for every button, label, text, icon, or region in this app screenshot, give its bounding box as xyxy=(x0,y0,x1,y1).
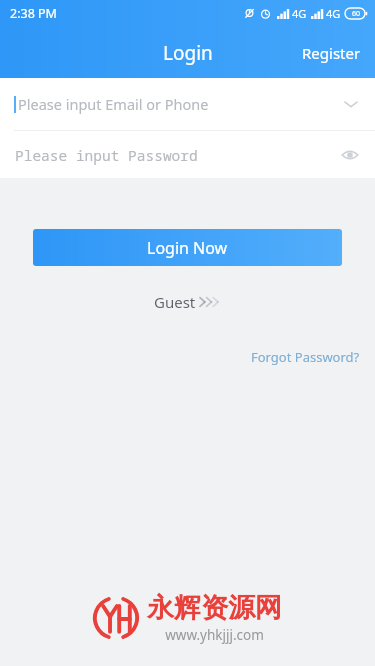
staticText: 4G xyxy=(292,6,307,21)
other: Toggle password visibility xyxy=(341,146,359,164)
staticText: Please input Email or Phone xyxy=(18,94,343,114)
staticText: Login xyxy=(163,40,213,66)
button[interactable]: Guest xyxy=(142,288,234,316)
button[interactable]: Register xyxy=(288,27,375,78)
staticText: Login Now xyxy=(147,237,228,259)
staticText: Please input Password xyxy=(15,145,341,165)
button[interactable]: Please input Password xyxy=(0,131,375,178)
other: Show account list xyxy=(343,96,359,112)
staticText: 4G xyxy=(326,6,341,21)
staticText: Register xyxy=(302,43,361,63)
button[interactable]: Please input Email or Phone xyxy=(0,78,375,130)
button[interactable]: Login Now xyxy=(33,229,342,266)
staticText: www.yhkjjj.com xyxy=(165,626,264,644)
staticText: Forgot Password? xyxy=(251,348,360,366)
staticText: 永辉资源网 xyxy=(147,591,282,625)
button[interactable]: Forgot Password? xyxy=(251,345,375,369)
staticText: 2:38 PM xyxy=(10,5,57,22)
staticText: Guest xyxy=(154,292,196,312)
staticText: 60 xyxy=(352,9,361,19)
